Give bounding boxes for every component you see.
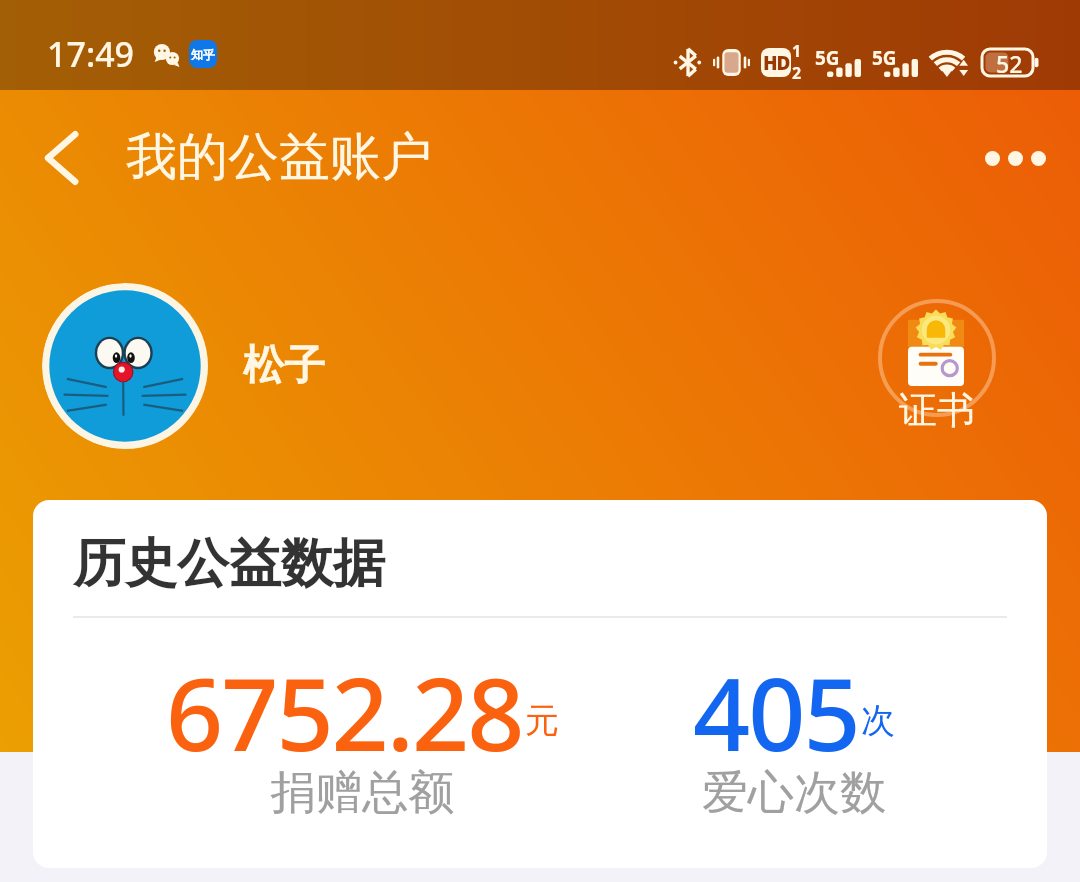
- staticText: 17:49: [47, 31, 135, 77]
- button[interactable]: Certificate: [862, 283, 1012, 433]
- staticText: 历史公益数据: [73, 531, 385, 597]
- staticText: 元: [525, 699, 559, 742]
- staticText: 5G: [815, 45, 840, 71]
- staticText: 捐赠总额: [270, 764, 454, 822]
- staticText: 405: [693, 644, 859, 780]
- staticText: 松子: [243, 340, 325, 392]
- staticText: 2: [792, 62, 802, 84]
- staticText: 证书: [899, 386, 975, 433]
- button[interactable]: Back: [23, 120, 99, 196]
- staticText: 5G: [872, 45, 897, 71]
- button[interactable]: 松子: [42, 283, 349, 449]
- staticText: 6752.28: [166, 644, 523, 780]
- staticText: 我的公益账户: [126, 125, 432, 189]
- staticText: 次: [861, 699, 895, 742]
- button[interactable]: More options: [970, 120, 1060, 196]
- staticText: 1: [792, 40, 802, 62]
- staticText: 52: [996, 48, 1023, 75]
- staticText: 知乎: [191, 47, 215, 62]
- staticText: HD: [763, 50, 790, 76]
- staticText: 爱心次数: [702, 764, 886, 822]
- button[interactable]: 6752.28: [142, 644, 582, 844]
- button[interactable]: 405: [574, 644, 1014, 844]
